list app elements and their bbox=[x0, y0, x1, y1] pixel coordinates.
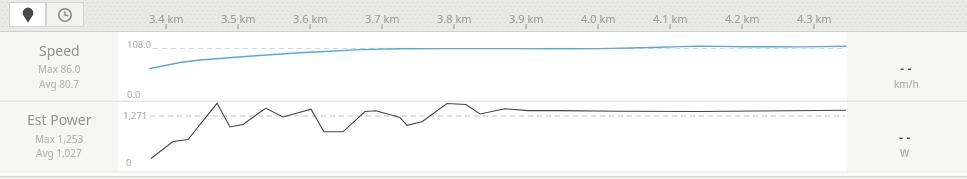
staticText: km/h bbox=[894, 77, 919, 91]
staticText: Avg 1,027 bbox=[36, 146, 82, 160]
staticText: 4.2 km bbox=[725, 11, 760, 26]
button[interactable] bbox=[46, 2, 84, 27]
staticText: Max 1,253 bbox=[35, 132, 84, 146]
staticText: 3.7 km bbox=[365, 11, 400, 26]
staticText: 0.0 bbox=[127, 88, 141, 101]
staticText: 108.0 bbox=[127, 38, 152, 51]
staticText: - - bbox=[900, 59, 912, 77]
staticText: 0 bbox=[126, 156, 132, 169]
staticText: - - bbox=[899, 128, 911, 146]
staticText: 4.1 km bbox=[653, 11, 688, 26]
staticText: 4.3 km bbox=[797, 11, 832, 26]
staticText: 3.5 km bbox=[221, 11, 256, 26]
staticText: Est Power bbox=[27, 110, 92, 129]
staticText: 1,271 bbox=[123, 109, 148, 122]
staticText: Max 86.0 bbox=[38, 62, 81, 76]
staticText: 3.4 km bbox=[149, 11, 184, 26]
button[interactable] bbox=[9, 2, 46, 27]
staticText: Speed bbox=[39, 41, 80, 60]
staticText: W bbox=[900, 146, 910, 160]
staticText: Avg 80.7 bbox=[39, 77, 80, 91]
staticText: 3.6 km bbox=[293, 11, 328, 26]
staticText: 3.9 km bbox=[509, 11, 544, 26]
staticText: 3.8 km bbox=[437, 11, 472, 26]
staticText: 4.0 km bbox=[581, 11, 616, 26]
